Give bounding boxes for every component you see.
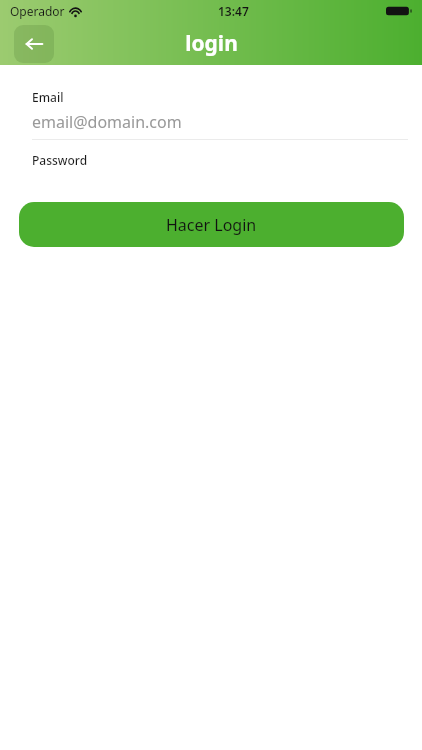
staticText: login xyxy=(185,29,238,58)
staticText: email@domain.com xyxy=(32,111,182,133)
button[interactable]: Hacer Login xyxy=(19,202,404,247)
button[interactable]: Password xyxy=(0,152,422,174)
staticText: Operador xyxy=(10,3,65,19)
button[interactable]: Email xyxy=(0,89,422,140)
staticText: Hacer Login xyxy=(166,214,257,236)
staticText: Password xyxy=(32,152,88,168)
staticText: Email xyxy=(32,89,64,105)
button[interactable]: Back xyxy=(14,25,54,63)
staticText: 13:47 xyxy=(218,3,249,19)
